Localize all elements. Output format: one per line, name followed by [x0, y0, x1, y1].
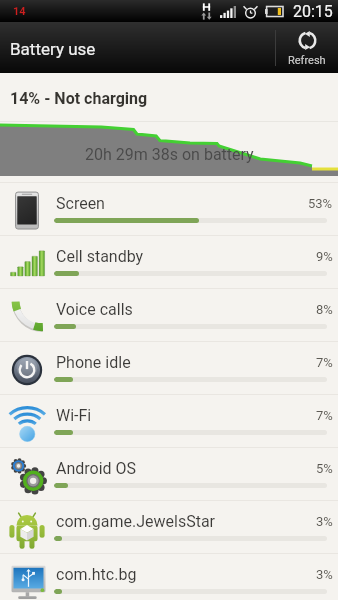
button[interactable]: Phone idle: [0, 341, 338, 394]
staticText: 3%: [316, 567, 333, 582]
staticText: Phone idle: [56, 353, 131, 372]
button[interactable]: com.htc.bg: [0, 553, 338, 600]
button[interactable]: Cell standby: [0, 235, 338, 288]
staticText: 7%: [316, 408, 333, 423]
staticText: Android OS: [56, 459, 137, 478]
staticText: Cell standby: [56, 247, 144, 266]
button[interactable]: Voice calls: [0, 288, 338, 341]
staticText: Screen: [56, 194, 105, 213]
staticText: Wi-Fi: [56, 406, 92, 425]
staticText: Refresh: [288, 54, 326, 67]
button[interactable]: com.game.JewelsStar: [0, 500, 338, 553]
staticText: 3%: [316, 514, 333, 529]
staticText: Battery use: [10, 39, 96, 59]
staticText: 5%: [316, 461, 333, 476]
staticText: 53%: [308, 196, 333, 211]
staticText: 8%: [316, 302, 333, 317]
staticText: 20:15: [293, 2, 333, 21]
staticText: 14% - Not charging: [10, 89, 148, 108]
staticText: com.game.JewelsStar: [56, 512, 215, 531]
staticText: 20h 29m 38s on battery: [85, 145, 254, 164]
staticText: 9%: [316, 249, 333, 264]
button[interactable]: Screen: [0, 182, 338, 235]
button[interactable]: Android OS: [0, 447, 338, 500]
button[interactable]: Refresh: [276, 22, 338, 73]
staticText: Voice calls: [56, 300, 133, 319]
staticText: com.htc.bg: [56, 565, 137, 584]
staticText: 14: [13, 5, 26, 18]
button[interactable]: Wi-Fi: [0, 394, 338, 447]
staticText: 7%: [316, 355, 333, 370]
